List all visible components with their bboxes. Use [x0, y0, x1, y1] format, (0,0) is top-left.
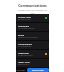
button[interactable]: Phone calls: [16, 14, 49, 22]
staticText: All channels on: [18, 45, 32, 48]
button[interactable]: Set up now: [27, 68, 49, 72]
staticText: 12 unread threads: [18, 27, 35, 30]
staticText: Voicemail: [18, 51, 29, 54]
button[interactable]: Messages: [16, 23, 49, 31]
staticText: Manage every call, message and alert: [16, 9, 49, 14]
staticText: Set up now: [32, 69, 44, 72]
staticText: Messages: [18, 24, 30, 27]
button[interactable]: Email: [16, 32, 49, 40]
staticText: Quiet hours: [18, 63, 29, 66]
staticText: Synced 2 minutes ago: [18, 36, 38, 39]
staticText: Notifications: [18, 42, 33, 45]
button[interactable]: Team chat: [16, 59, 49, 67]
staticText: Team chat: [18, 60, 30, 63]
staticText: Recent activity: [18, 18, 31, 21]
staticText: Email: [18, 33, 25, 36]
staticText: 3 new messages: [18, 54, 33, 57]
button[interactable]: Notifications: [16, 41, 49, 49]
button[interactable]: Voicemail: [16, 50, 49, 58]
staticText: Not now: [16, 69, 25, 72]
staticText: Phone calls: [18, 15, 31, 18]
staticText: Communications: [18, 3, 47, 8]
